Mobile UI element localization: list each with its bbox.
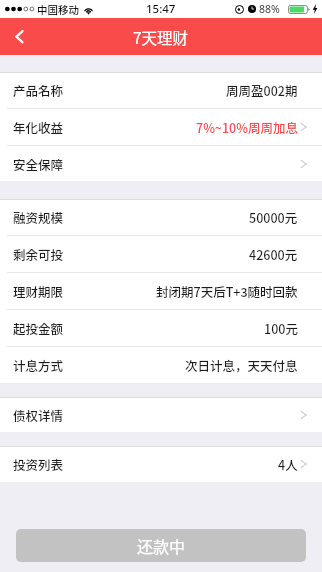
button[interactable]: Back [0, 18, 38, 55]
staticText: 理财期限 [13, 282, 64, 300]
button[interactable]: 产品名称 [0, 72, 322, 109]
staticText: 88% [259, 2, 280, 16]
staticText: 年化收益 [13, 118, 64, 136]
button[interactable]: 债权详情 [0, 397, 322, 432]
staticText: 7天理财 [133, 26, 189, 48]
button[interactable]: 融资规模 [0, 199, 322, 236]
staticText: 产品名称 [13, 81, 64, 99]
button[interactable]: 剩余可投 [0, 236, 322, 273]
staticText: 15:47 [146, 1, 176, 17]
button[interactable]: 安全保障 [0, 146, 322, 181]
staticText: 4人 [278, 455, 298, 473]
staticText: 起投金额 [13, 319, 64, 337]
staticText: 42600元 [249, 245, 298, 263]
staticText: 周周盈002期 [226, 81, 298, 99]
staticText: 剩余可投 [13, 245, 64, 263]
staticText: 安全保障 [13, 155, 64, 173]
button[interactable]: 年化收益 [0, 109, 322, 146]
staticText: 次日计息，天天付息 [185, 356, 298, 374]
staticText: 债权详情 [13, 406, 64, 424]
button[interactable]: 起投金额 [0, 310, 322, 347]
staticText: 50000元 [249, 208, 298, 226]
button[interactable]: 理财期限 [0, 273, 322, 310]
button[interactable]: 计息方式 [0, 347, 322, 383]
staticText: 还款中 [137, 534, 186, 557]
staticText: 投资列表 [13, 455, 64, 473]
staticText: 中国移动 [37, 2, 79, 17]
staticText: 计息方式 [13, 356, 64, 374]
staticText: 7%~10%周周加息 [196, 118, 298, 136]
button[interactable]: 投资列表 [0, 446, 322, 482]
staticText: 融资规模 [13, 208, 64, 226]
button[interactable]: 还款中 [16, 529, 306, 562]
staticText: 100元 [264, 319, 298, 337]
staticText: 封闭期7天后T+3随时回款 [156, 282, 298, 300]
